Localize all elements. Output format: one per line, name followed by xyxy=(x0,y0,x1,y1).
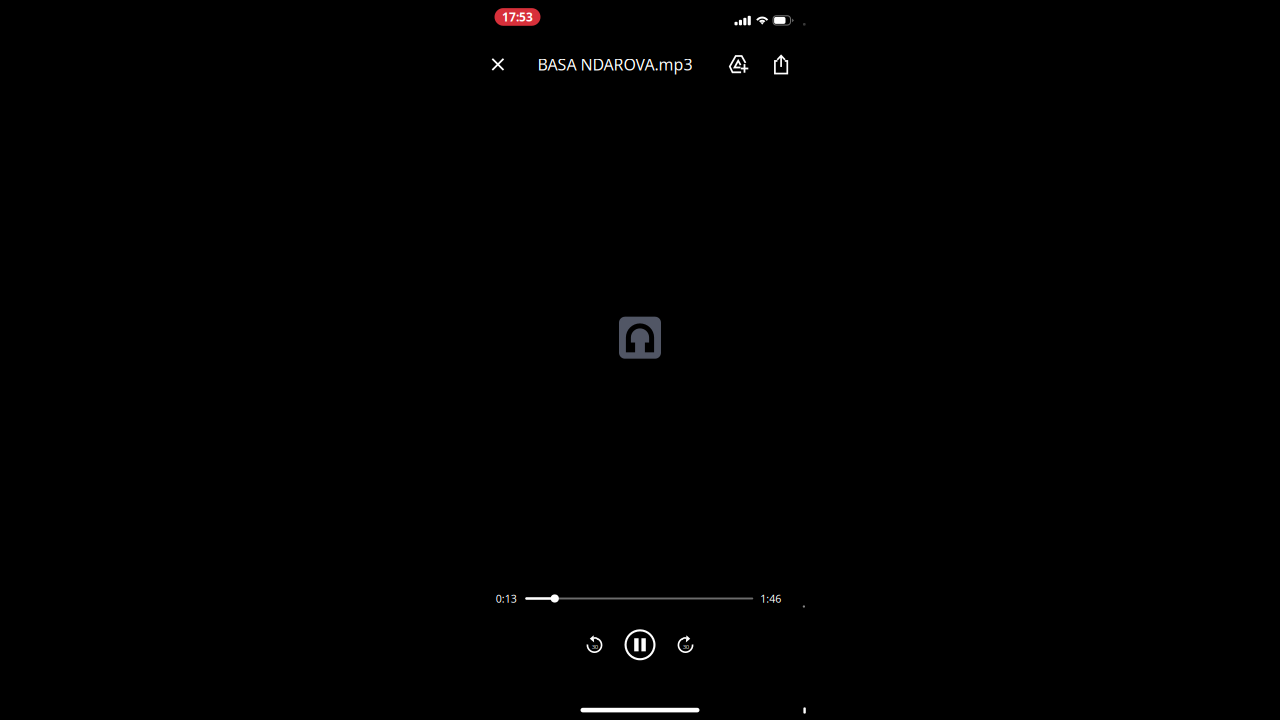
button[interactable]: Add to My Drive xyxy=(721,47,757,81)
staticText: BASA NDAROVA.mp3 xyxy=(537,53,692,75)
staticText: 30 xyxy=(592,643,598,651)
button[interactable]: Share xyxy=(763,47,799,81)
staticText: 0:13 xyxy=(496,591,517,606)
button[interactable]: Pause xyxy=(621,626,659,664)
button[interactable]: Close xyxy=(481,47,515,81)
staticText: 30 xyxy=(683,643,689,651)
button[interactable]: Rewind 30 seconds xyxy=(577,628,611,662)
button[interactable]: Forward 30 seconds xyxy=(668,628,702,662)
staticText: 1:46 xyxy=(760,591,781,606)
staticText: 17:53 xyxy=(502,9,533,25)
